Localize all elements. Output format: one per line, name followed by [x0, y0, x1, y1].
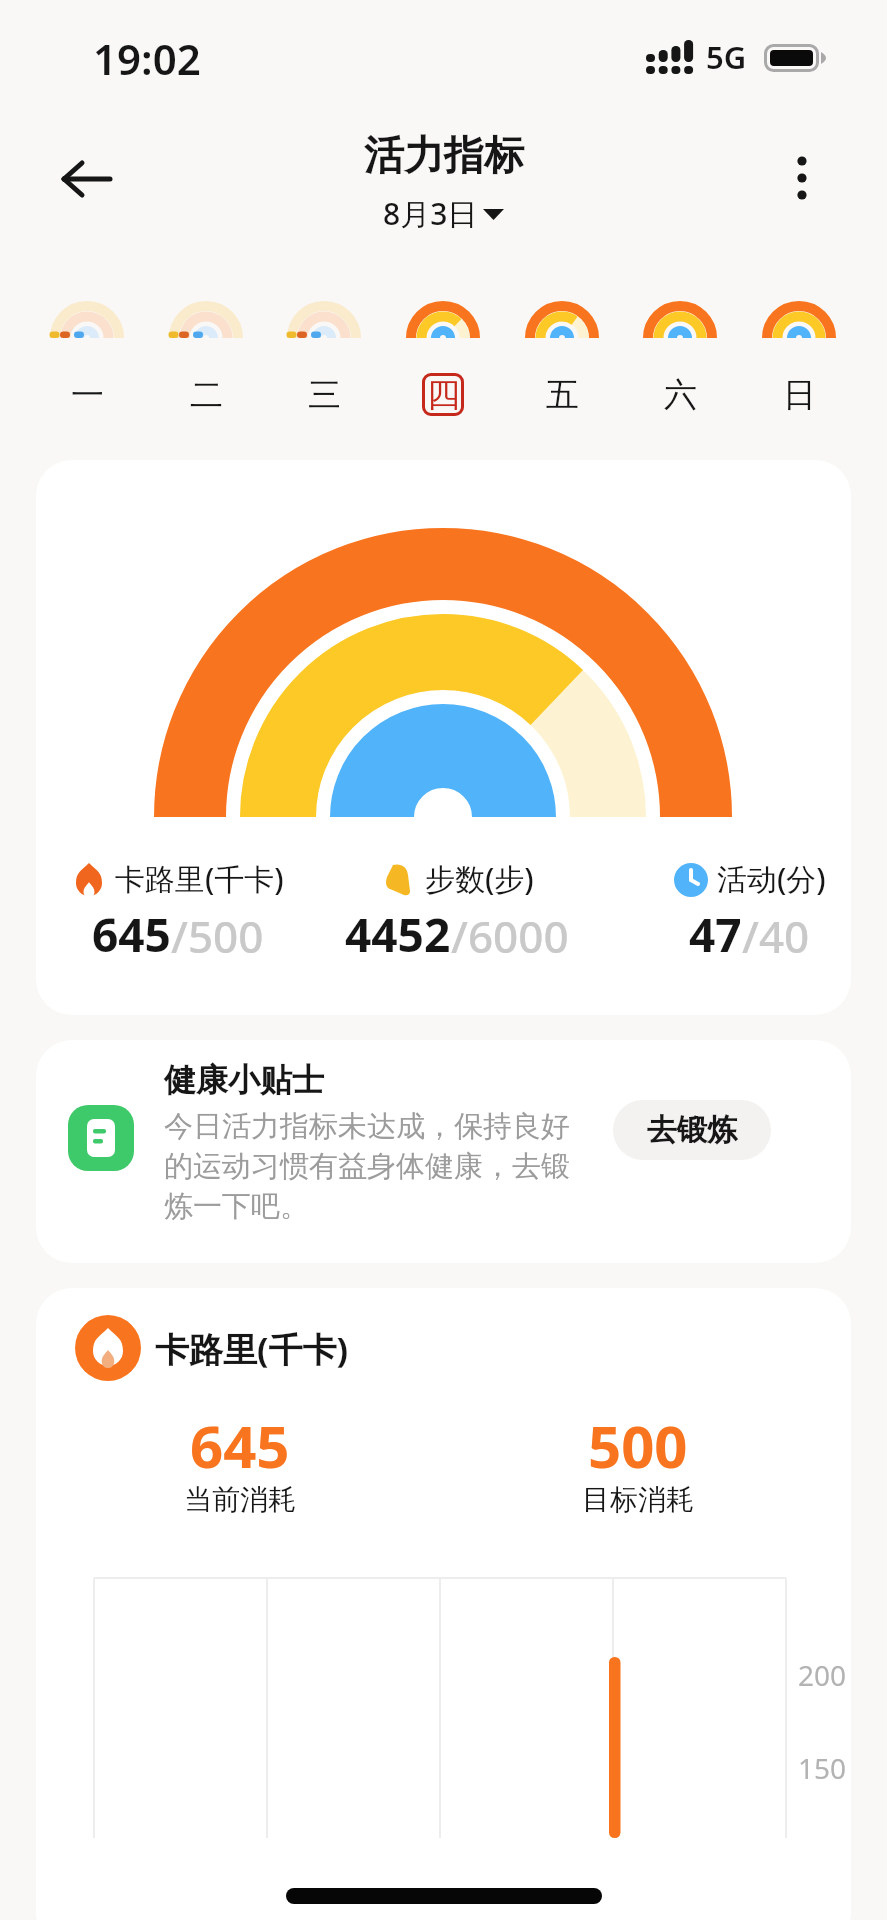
button[interactable] — [762, 138, 842, 218]
staticText: 8月3日 — [383, 193, 478, 234]
staticText: 卡路里(千卡) — [115, 858, 284, 899]
button[interactable]: 二 — [161, 292, 251, 422]
staticText: 五 — [546, 374, 579, 416]
button[interactable]: 8月3日 — [383, 193, 504, 234]
button[interactable]: 日 — [754, 292, 844, 422]
staticText: 19:02 — [93, 30, 201, 87]
button[interactable]: 一 — [42, 292, 132, 422]
staticText: 六 — [664, 374, 697, 416]
button[interactable]: 三 — [279, 292, 369, 422]
staticText: 645 — [190, 1406, 290, 1485]
staticText: 47 — [689, 903, 742, 966]
staticText: 四 — [427, 374, 460, 416]
staticText: 去锻炼 — [647, 1111, 737, 1149]
button[interactable]: 六 — [635, 292, 725, 422]
staticText: 步数(步) — [425, 858, 534, 899]
staticText: 活力指标 — [364, 130, 524, 180]
staticText: 卡路里(千卡) — [155, 1326, 349, 1372]
staticText: /500 — [171, 906, 264, 966]
staticText: 4452 — [345, 903, 451, 966]
staticText: 5G — [706, 36, 747, 78]
staticText: 健康小贴士 — [164, 1060, 324, 1100]
staticText: 今日活力指标未达成，保持良好 的运动习惯有益身体健康，去锻 炼一下吧。 — [164, 1108, 570, 1224]
staticText: /6000 — [451, 906, 569, 966]
button[interactable]: 健康小贴士 — [36, 1040, 851, 1263]
button[interactable]: 去锻炼 — [613, 1100, 771, 1160]
staticText: 200 — [798, 1656, 847, 1694]
staticText: 日 — [783, 374, 816, 416]
button[interactable] — [40, 140, 136, 216]
staticText: 三 — [308, 374, 341, 416]
staticText: 目标消耗 — [582, 1482, 694, 1517]
staticText: 500 — [588, 1406, 688, 1485]
staticText: 645 — [92, 903, 171, 966]
staticText: 二 — [190, 374, 223, 416]
button[interactable]: 五 — [517, 292, 607, 422]
staticText: 150 — [798, 1749, 847, 1787]
staticText: 一 — [71, 374, 104, 416]
staticText: 当前消耗 — [184, 1482, 296, 1517]
button[interactable]: 四 — [398, 292, 488, 422]
staticText: /40 — [742, 906, 810, 966]
staticText: 活动(分) — [717, 858, 826, 899]
